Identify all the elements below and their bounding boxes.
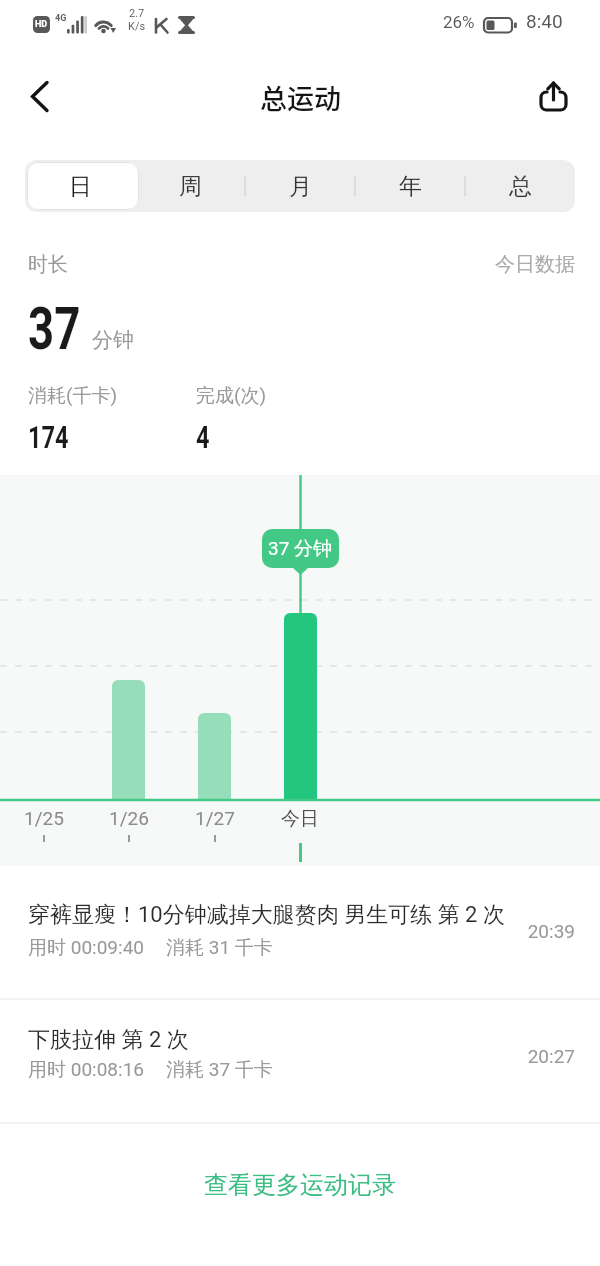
staticText: 今日数据 [495,252,575,277]
staticText: K/s [128,20,146,33]
button[interactable]: 下肢拉伸 第 2 次 [0,1015,600,1120]
staticText: 1/25 [24,807,64,829]
staticText: 1/27 [195,807,235,829]
staticText: 37 [28,293,80,363]
staticText: 年 [399,172,422,201]
staticText: 周 [179,172,202,201]
staticText: 日 [69,172,92,201]
staticText: 总 [509,172,532,201]
staticText: 完成(次) [196,384,267,408]
staticText: 时长 [28,252,68,277]
staticText: 总运动 [260,78,341,117]
button[interactable]: 年 [355,160,465,212]
staticText: HD [35,19,48,30]
button[interactable]: 穿裤显瘦！10分钟减掉大腿赘肉 男生可练 第 2 次 [0,890,600,995]
staticText: 今日 [281,807,319,831]
button[interactable] [18,79,54,115]
button[interactable]: 月 [245,160,355,212]
staticText: 20:27 [0,1045,575,1067]
staticText: 穿裤显瘦！10分钟减掉大腿赘肉 男生可练 第 2 次 [28,901,505,929]
staticText: 1/26 [109,807,149,829]
button[interactable]: 日 [25,160,135,212]
staticText: 消耗 31 千卡 [166,936,273,960]
staticText: 月 [289,172,312,201]
staticText: 下肢拉伸 第 2 次 [28,1026,189,1054]
staticText: 用时 00:08:16 [28,1058,144,1082]
staticText: 37 分钟 [268,537,333,561]
staticText: 4 [196,419,210,455]
staticText: 174 [28,419,69,455]
staticText: 消耗 37 千卡 [166,1058,273,1082]
staticText: 8:40 [526,10,563,32]
staticText: 消耗(千卡) [28,384,118,408]
staticText: 查看更多运动记录 [204,1170,396,1200]
staticText: 2.7 [129,7,145,20]
button[interactable] [533,77,573,117]
staticText: 分钟 [92,327,134,353]
staticText: 4G [55,13,67,24]
staticText: 用时 00:09:40 [28,936,144,960]
button[interactable]: 查看更多运动记录 [0,1160,600,1210]
button[interactable]: 周 [135,160,245,212]
staticText: 26% [443,12,475,32]
button[interactable]: 总 [465,160,575,212]
staticText: 20:39 [0,920,575,942]
